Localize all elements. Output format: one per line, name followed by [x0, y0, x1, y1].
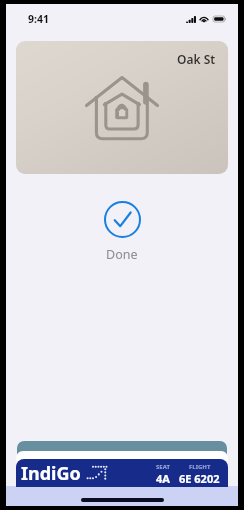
button[interactable]: IndiGo [16, 459, 228, 487]
staticText: Done [106, 246, 138, 263]
staticText: Oak St [177, 51, 216, 67]
staticText: 9:41 [28, 12, 49, 26]
staticText: SEAT [156, 463, 170, 471]
button[interactable]: HELLO [16, 451, 228, 465]
button[interactable]: Oak St [16, 41, 228, 174]
staticText: IndiGo [21, 461, 81, 486]
staticText: 6E 6202 [179, 471, 220, 486]
staticText: FLIGHT [189, 463, 211, 471]
staticText: 4A [156, 471, 170, 486]
staticText: HELLO [194, 457, 214, 465]
staticText: HEALTH [191, 453, 215, 461]
button[interactable]: AMMA [17, 441, 227, 461]
staticText: AMMA [29, 451, 52, 461]
